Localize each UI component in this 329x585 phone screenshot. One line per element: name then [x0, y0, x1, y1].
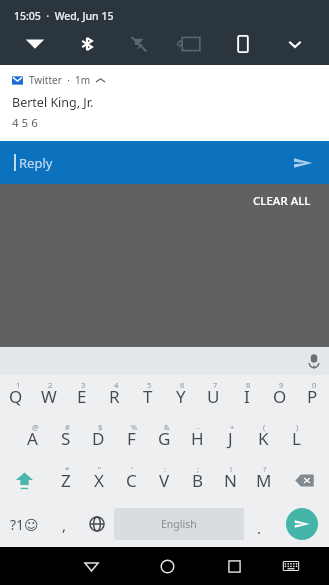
button[interactable]: Back: [53, 547, 129, 585]
button[interactable]: Flashlight: [113, 23, 165, 65]
staticText: !: [230, 464, 233, 474]
button[interactable]: L: [280, 417, 313, 459]
button[interactable]: ?1☺: [0, 501, 49, 547]
button[interactable]: English: [114, 508, 244, 540]
staticText: Twitter: [29, 73, 62, 87]
staticText: ": [98, 464, 102, 474]
staticText: Reply: [19, 154, 53, 172]
button[interactable]: Voice input: [299, 347, 329, 375]
button[interactable]: Expand: [269, 23, 321, 65]
button[interactable]: X: [82, 459, 115, 501]
button[interactable]: H: [181, 417, 214, 459]
staticText: X: [94, 469, 104, 492]
button[interactable]: E: [65, 375, 98, 417]
staticText: E: [77, 385, 87, 408]
staticText: J: [228, 427, 233, 450]
staticText: O: [273, 385, 287, 408]
button[interactable]: N: [214, 459, 247, 501]
button[interactable]: O: [263, 375, 296, 417]
staticText: T: [143, 385, 153, 408]
staticText: .: [257, 518, 262, 538]
staticText: ?: [263, 464, 267, 474]
button[interactable]: C: [115, 459, 148, 501]
button[interactable]: U: [197, 375, 230, 417]
staticText: 4: [114, 380, 119, 390]
staticText: M: [256, 469, 272, 492]
staticText: S: [61, 427, 71, 450]
staticText: @: [32, 422, 39, 432]
staticText: 3: [81, 380, 86, 390]
staticText: 9: [279, 380, 284, 390]
button[interactable]: CLEAR ALL: [235, 187, 329, 215]
staticText: +: [230, 422, 235, 432]
staticText: Y: [176, 385, 186, 408]
button[interactable]: P: [296, 375, 329, 417]
staticText: P: [307, 385, 318, 408]
staticText: :: [164, 464, 167, 474]
staticText: %: [131, 422, 138, 432]
staticText: A: [27, 427, 38, 450]
staticText: &: [164, 422, 170, 432]
staticText: -: [197, 422, 200, 432]
button[interactable]: W: [32, 375, 65, 417]
staticText: I: [244, 385, 250, 408]
button[interactable]: Z: [49, 459, 82, 501]
button[interactable]: .: [244, 501, 275, 547]
button[interactable]: Backspace: [280, 459, 329, 501]
staticText: CLEAR ALL: [253, 193, 311, 209]
button[interactable]: G: [148, 417, 181, 459]
staticText: W: [41, 385, 57, 408]
staticText: B: [192, 469, 204, 492]
button[interactable]: ,: [49, 501, 80, 547]
staticText: R: [109, 385, 120, 408]
button[interactable]: A: [16, 417, 49, 459]
staticText: $: [98, 422, 103, 432]
staticText: D: [92, 427, 105, 450]
staticText: V: [159, 469, 170, 492]
button[interactable]: Shift: [0, 459, 49, 501]
button[interactable]: Wi-Fi: [8, 23, 61, 65]
staticText: U: [207, 385, 220, 408]
staticText: Q: [9, 385, 23, 408]
button[interactable]: Change language: [80, 501, 114, 547]
button[interactable]: Reply: [0, 141, 329, 184]
button[interactable]: Y: [164, 375, 197, 417]
button[interactable]: Switch keyboard: [264, 547, 317, 585]
button[interactable]: Send: [275, 501, 329, 547]
button[interactable]: S: [49, 417, 82, 459]
button[interactable]: Auto-rotate: [217, 23, 269, 65]
staticText: G: [158, 427, 171, 450]
button[interactable]: V: [148, 459, 181, 501]
button[interactable]: B: [181, 459, 214, 501]
button[interactable]: D: [82, 417, 115, 459]
button[interactable]: Q: [0, 375, 32, 417]
staticText: ': [131, 464, 133, 474]
staticText: 6: [180, 380, 185, 390]
staticText: L: [292, 427, 301, 450]
staticText: K: [258, 427, 269, 450]
staticText: 8: [246, 380, 251, 390]
button[interactable]: J: [214, 417, 247, 459]
staticText: Bertel King, Jr.: [12, 94, 94, 111]
button[interactable]: Send reply: [291, 151, 315, 175]
button[interactable]: I: [230, 375, 263, 417]
staticText: ,: [62, 515, 67, 535]
button[interactable]: Twitter: [0, 65, 329, 141]
button[interactable]: Recent apps: [205, 547, 264, 585]
staticText: 2: [48, 380, 53, 390]
button[interactable]: M: [247, 459, 280, 501]
staticText: ;: [197, 464, 200, 474]
button[interactable]: Home: [129, 547, 205, 585]
staticText: ?1☺: [10, 515, 39, 534]
button[interactable]: R: [98, 375, 131, 417]
staticText: ): [296, 422, 299, 432]
button[interactable]: Cast: [165, 23, 217, 65]
staticText: 1: [16, 380, 21, 390]
button[interactable]: T: [131, 375, 164, 417]
staticText: *: [65, 464, 70, 474]
button[interactable]: K: [247, 417, 280, 459]
staticText: 7: [213, 380, 218, 390]
staticText: N: [224, 469, 237, 492]
button[interactable]: F: [115, 417, 148, 459]
button[interactable]: Bluetooth: [61, 23, 113, 65]
